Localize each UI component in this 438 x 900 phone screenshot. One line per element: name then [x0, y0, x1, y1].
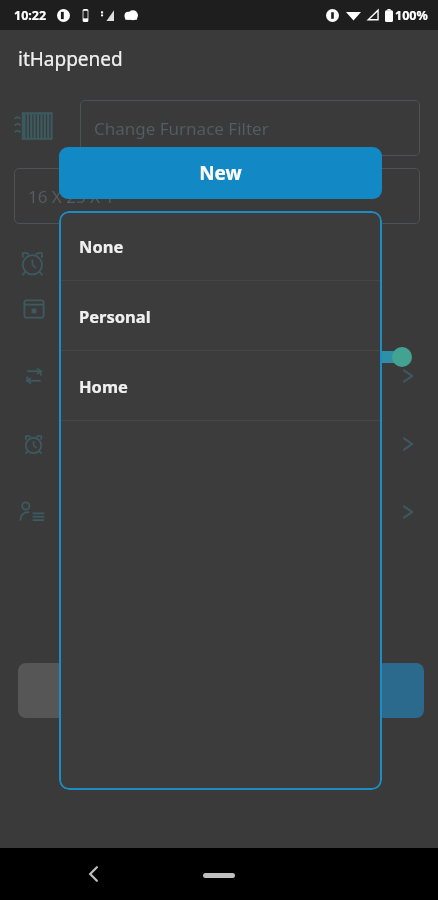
staticText: None [79, 235, 124, 257]
button[interactable]: None [59, 211, 382, 280]
button[interactable]: Back [82, 862, 106, 886]
staticText: 100% [395, 7, 428, 24]
staticText: 10:22 [14, 7, 47, 24]
staticText: Change Furnace Filter [94, 117, 269, 140]
button[interactable]: New [59, 147, 382, 199]
staticText: Home [79, 375, 128, 397]
staticText: 16 X 25 X 1 [28, 185, 115, 208]
staticText: itHappened [18, 46, 123, 72]
other: Home [203, 873, 235, 878]
staticText: Personal [79, 305, 151, 327]
button[interactable]: Home [59, 351, 382, 420]
staticText: New [199, 160, 242, 186]
button[interactable]: Personal [59, 281, 382, 350]
